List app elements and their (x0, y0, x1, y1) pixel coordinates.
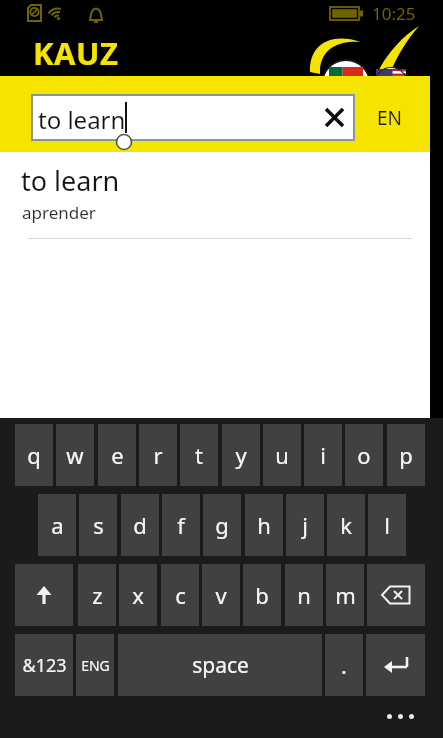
staticText: u (275, 440, 289, 470)
staticText: y (235, 440, 247, 470)
staticText: s (93, 510, 104, 540)
button[interactable]: j (286, 494, 324, 556)
staticText: w (66, 440, 84, 470)
staticText: aprender (22, 201, 96, 224)
staticText: v (215, 580, 227, 610)
button[interactable]: r (139, 424, 177, 486)
staticText: f (177, 510, 185, 540)
staticText: g (215, 510, 229, 540)
staticText: e (111, 440, 124, 470)
staticText: EN (377, 105, 403, 131)
staticText: ENG (81, 656, 110, 675)
staticText: o (357, 440, 371, 470)
staticText: to learn (38, 103, 126, 136)
staticText: n (297, 580, 311, 610)
staticText: m (335, 580, 356, 610)
button[interactable]: z (78, 564, 116, 626)
staticText: z (92, 580, 103, 610)
staticText: 10:25 (372, 2, 416, 25)
button[interactable]: Enter (366, 634, 425, 696)
button[interactable]: Shift (15, 564, 73, 626)
button[interactable]: v (202, 564, 240, 626)
button[interactable]: y (222, 424, 260, 486)
other: KAUZ owl logo (303, 24, 428, 74)
button[interactable]: a (38, 494, 76, 556)
button[interactable]: s (79, 494, 117, 556)
button[interactable]: t (180, 424, 218, 486)
button[interactable]: k (327, 494, 365, 556)
staticText: l (384, 510, 390, 540)
staticText: r (153, 440, 163, 470)
staticText: i (320, 440, 326, 470)
button[interactable]: . (325, 634, 363, 696)
button[interactable]: More options (370, 700, 430, 732)
staticText: j (302, 510, 308, 540)
staticText: x (132, 580, 144, 610)
button[interactable]: d (121, 494, 159, 556)
staticText: . (341, 650, 347, 680)
button[interactable]: c (161, 564, 199, 626)
button[interactable]: p (387, 424, 425, 486)
staticText: &123 (22, 653, 67, 678)
staticText: to learn (21, 162, 120, 199)
button[interactable]: u (263, 424, 301, 486)
button[interactable]: n (285, 564, 323, 626)
button[interactable]: i (304, 424, 342, 486)
button[interactable]: e (98, 424, 136, 486)
button[interactable]: to learn (0, 152, 430, 239)
staticText: q (27, 440, 41, 470)
staticText: a (51, 510, 64, 540)
staticText: b (255, 580, 269, 610)
button[interactable]: b (243, 564, 281, 626)
staticText: t (195, 440, 203, 470)
staticText: KAUZ (33, 32, 119, 74)
button[interactable]: &123 (15, 634, 73, 696)
button[interactable]: g (203, 494, 241, 556)
button[interactable]: m (326, 564, 364, 626)
staticText: p (399, 440, 413, 470)
staticText: d (133, 510, 147, 540)
button[interactable]: f (162, 494, 200, 556)
button[interactable]: o (345, 424, 383, 486)
button[interactable]: to learn (31, 94, 355, 141)
button[interactable]: x (119, 564, 157, 626)
staticText: space (192, 651, 249, 680)
button[interactable]: h (245, 494, 283, 556)
button[interactable]: l (368, 494, 406, 556)
button[interactable]: space (118, 634, 322, 696)
button[interactable]: ENG (76, 634, 114, 696)
button[interactable]: Backspace (367, 564, 425, 626)
staticText: h (257, 510, 271, 540)
button[interactable]: w (56, 424, 94, 486)
button[interactable]: Clear text (316, 96, 353, 139)
button[interactable]: q (15, 424, 53, 486)
button[interactable]: EN (364, 94, 416, 141)
staticText: k (340, 510, 352, 540)
staticText: c (175, 580, 186, 610)
